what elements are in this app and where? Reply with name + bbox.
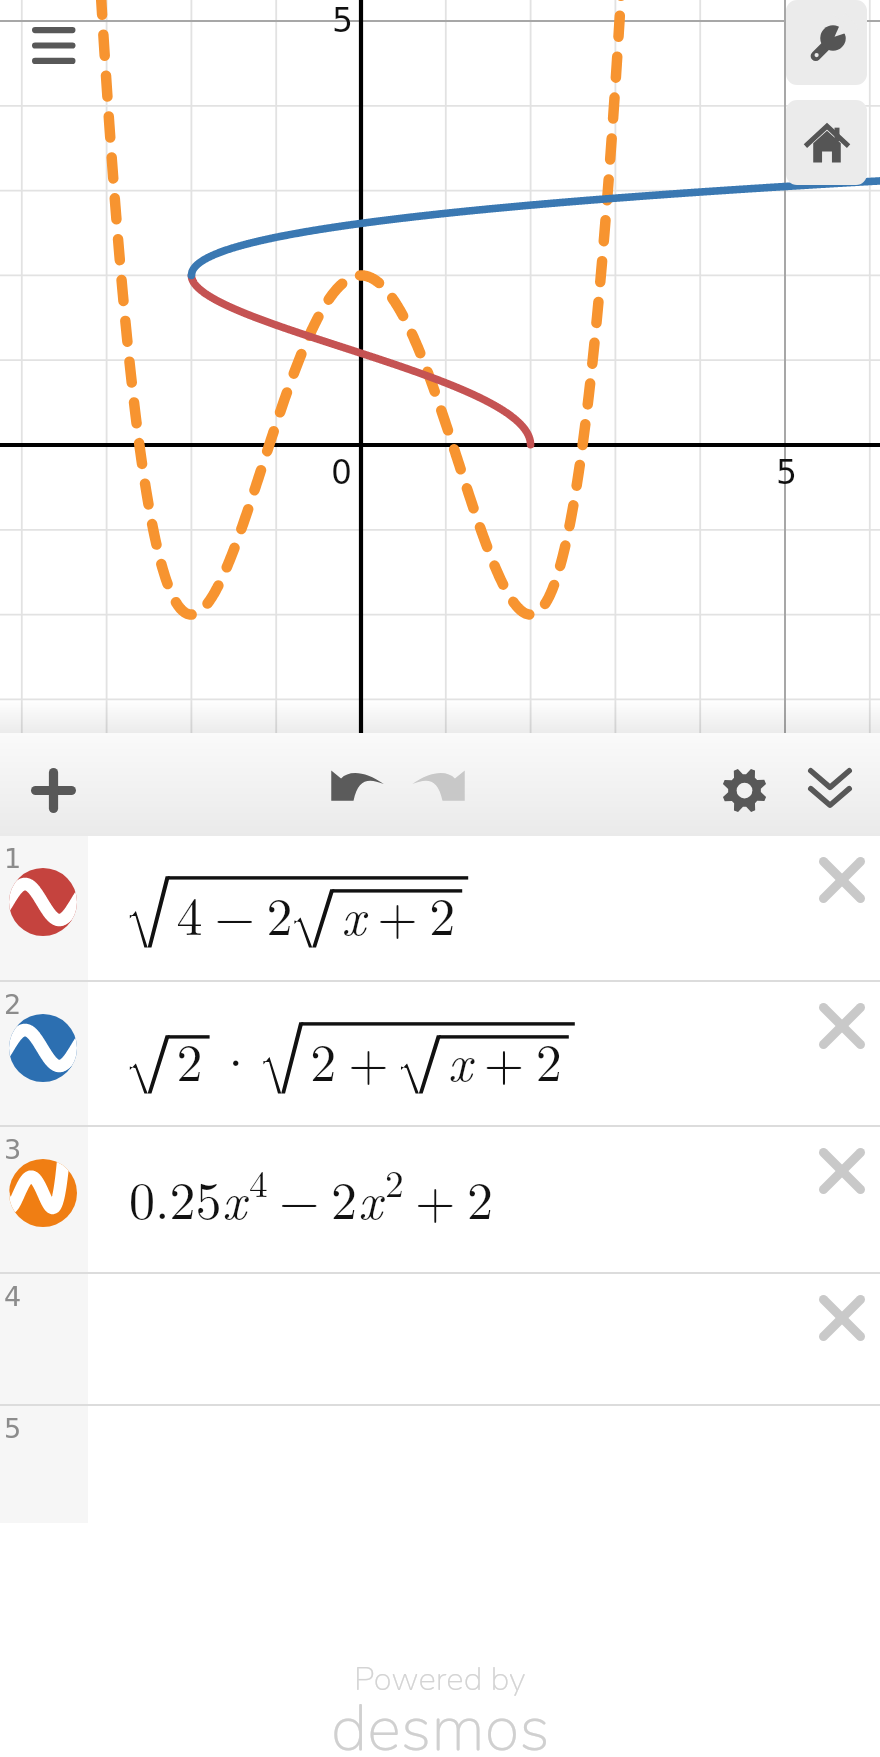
button[interactable]: 3 [0, 1127, 880, 1274]
staticText: 3 [4, 1134, 22, 1165]
staticText: 1 [4, 843, 22, 874]
button[interactable]: Menu [0, 0, 108, 92]
staticText: 5 [332, 1, 353, 39]
button[interactable]: Graph settings [786, 0, 867, 85]
staticText: Powered by [354, 1657, 526, 1702]
button[interactable]: Delete expression 4 [798, 1274, 880, 1362]
staticText: 2 [4, 989, 22, 1020]
button[interactable]: 1 [0, 836, 880, 982]
staticText: 5 [4, 1413, 22, 1444]
button[interactable]: Delete expression 1 [798, 836, 880, 924]
button[interactable]: Redo [378, 733, 490, 836]
button[interactable]: Delete expression 3 [798, 1127, 880, 1215]
button[interactable]: 5 [0, 1406, 880, 1523]
staticText: 0 [331, 453, 352, 491]
staticText: desmos [331, 1685, 550, 1757]
button[interactable]: Undo [296, 733, 408, 836]
button[interactable]: Settings [690, 733, 790, 836]
button[interactable]: Add expression [0, 733, 106, 836]
button[interactable]: Collapse expression list [790, 733, 880, 836]
button[interactable]: 4 [0, 1274, 880, 1406]
button[interactable]: 2 [0, 982, 880, 1127]
button[interactable]: Delete expression 2 [798, 982, 880, 1070]
button[interactable]: Home [786, 100, 867, 185]
staticText: 4 [4, 1281, 22, 1312]
staticText: 5 [776, 453, 797, 491]
